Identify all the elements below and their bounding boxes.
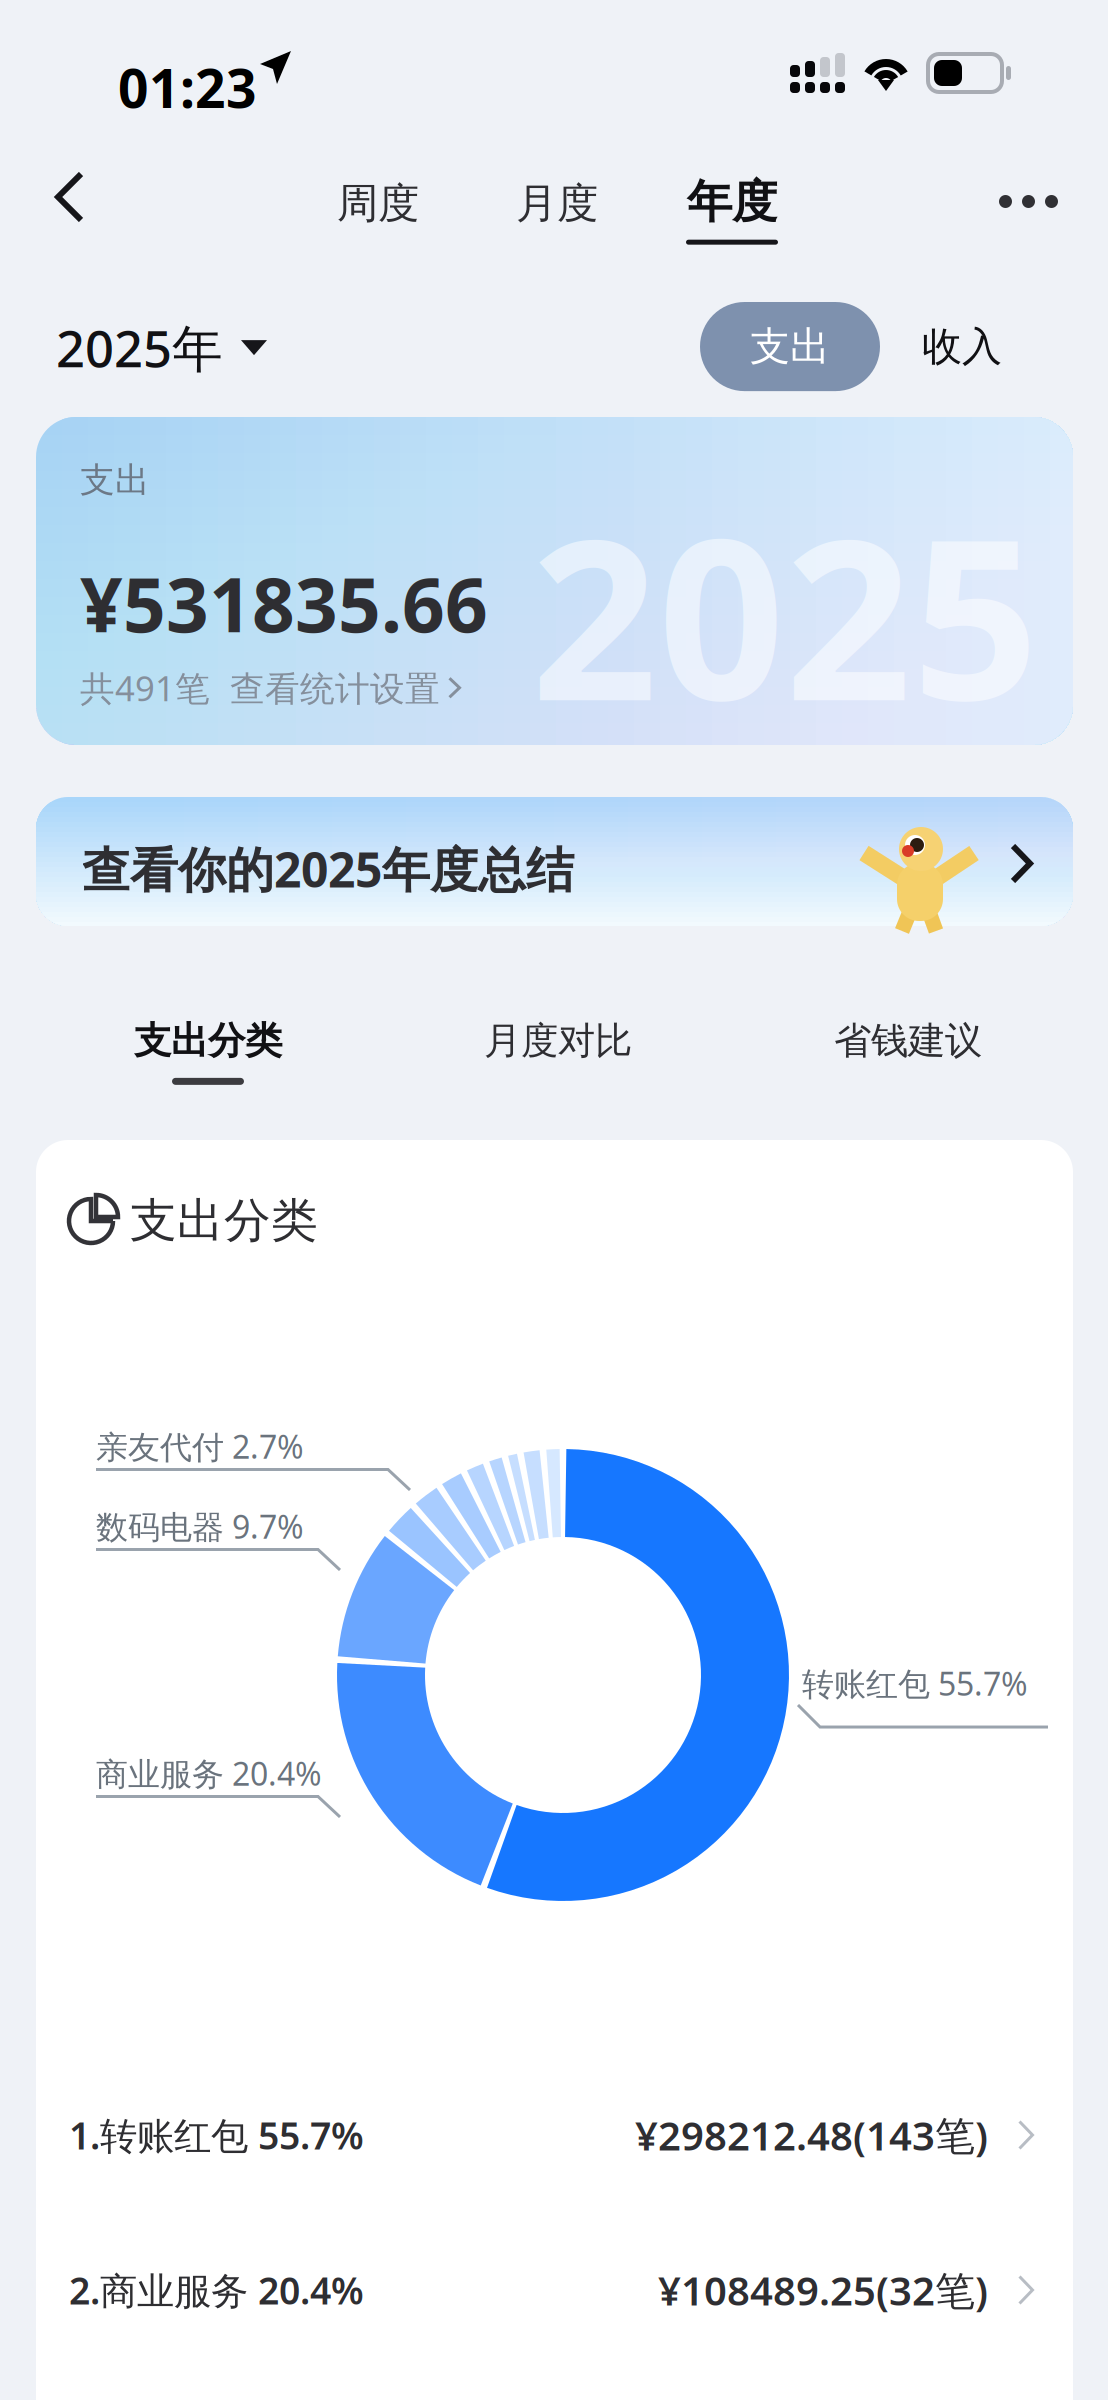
- staticText: 支出分类: [130, 1192, 318, 1249]
- button[interactable]: 月度: [502, 160, 612, 247]
- staticText: 月度: [516, 178, 598, 229]
- button[interactable]: 月度对比: [466, 1008, 650, 1074]
- staticText: 商业服务 20.4%: [96, 1752, 322, 1794]
- button[interactable]: 查看你的2025年度总结: [36, 797, 1073, 926]
- staticText: ¥298212.48(143笔): [635, 2108, 988, 2161]
- staticText: 支出: [750, 322, 830, 371]
- staticText: 查看你的2025年度总结: [82, 837, 574, 901]
- button[interactable]: 1.转账红包 55.7%: [36, 2108, 1073, 2162]
- staticText: 数码电器 9.7%: [96, 1505, 304, 1547]
- staticText: ¥108489.25(32笔): [658, 2263, 988, 2316]
- staticText: 2025年: [56, 314, 223, 381]
- staticText: 省钱建议: [834, 1018, 982, 1064]
- staticText: 支出分类: [134, 1018, 282, 1064]
- staticText: 共491笔 查看统计设置: [80, 665, 440, 711]
- staticText: 收入: [922, 322, 1002, 371]
- staticText: ¥531835.66: [80, 554, 488, 653]
- staticText: 年度: [687, 174, 777, 230]
- button[interactable]: 年度: [672, 160, 792, 245]
- staticText: 周度: [337, 178, 419, 229]
- button[interactable]: Back: [20, 145, 120, 249]
- button[interactable]: 收入: [906, 302, 1018, 391]
- staticText: 2025: [531, 467, 1039, 761]
- staticText: 1.转账红包 55.7%: [69, 2110, 364, 2160]
- button[interactable]: 支出分类: [116, 1008, 300, 1095]
- staticText: 转账红包 55.7%: [802, 1662, 1028, 1704]
- button[interactable]: 2025年: [56, 298, 267, 397]
- staticText: 月度对比: [484, 1018, 632, 1064]
- button[interactable]: 周度: [323, 160, 433, 247]
- staticText: 2.商业服务 20.4%: [69, 2265, 364, 2315]
- staticText: 亲友代付 2.7%: [96, 1425, 304, 1467]
- button[interactable]: 支出: [700, 302, 880, 391]
- button[interactable]: More options: [973, 169, 1084, 234]
- staticText: 支出: [80, 459, 150, 502]
- button[interactable]: 2.商业服务 20.4%: [36, 2263, 1073, 2317]
- button[interactable]: 省钱建议: [816, 1008, 1000, 1074]
- staticText: 01:23: [118, 52, 257, 123]
